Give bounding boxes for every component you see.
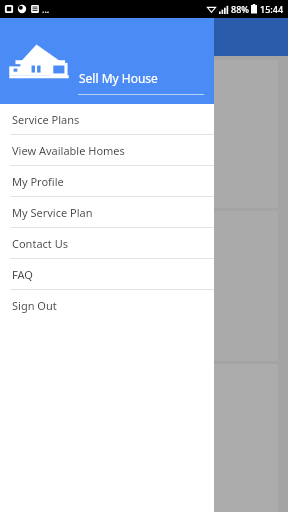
staticText: My Profile bbox=[12, 174, 64, 189]
button[interactable] bbox=[26, 170, 80, 194]
staticText: ... bbox=[42, 3, 50, 15]
button[interactable]: My Service Plan bbox=[0, 197, 214, 227]
staticText: FAQ bbox=[12, 267, 33, 282]
button[interactable]: My Profile bbox=[0, 166, 214, 196]
staticText: 88% bbox=[231, 3, 249, 15]
other: Sell My House logo bbox=[8, 40, 70, 84]
staticText: Contact Us bbox=[12, 236, 68, 251]
button[interactable]: Contact Us bbox=[0, 228, 214, 258]
button[interactable]: Sign Out bbox=[0, 290, 214, 320]
button[interactable]: View Available Homes bbox=[0, 135, 214, 165]
staticText: Sell My House bbox=[79, 70, 158, 86]
button[interactable]: Service Plans bbox=[0, 104, 214, 134]
staticText: Sign Out bbox=[12, 298, 57, 313]
staticText: View Available Homes bbox=[12, 143, 125, 158]
staticText: Service Plans bbox=[12, 112, 80, 127]
staticText: 15:44 bbox=[260, 3, 284, 15]
button[interactable]: FAQ bbox=[0, 259, 214, 289]
staticText: My Service Plan bbox=[12, 205, 93, 220]
